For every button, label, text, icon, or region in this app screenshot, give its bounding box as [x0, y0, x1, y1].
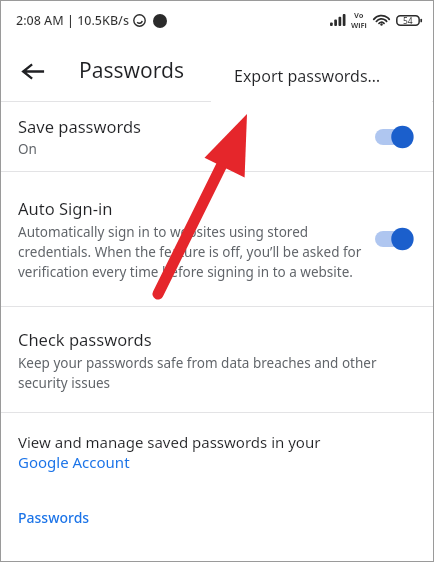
- staticText: Automatically sign in to websites using …: [18, 223, 363, 281]
- staticText: 54: [403, 15, 413, 27]
- staticText: Passwords: [18, 508, 90, 527]
- button[interactable]: Auto Sign-in: [0, 172, 434, 306]
- staticText: On: [18, 140, 37, 158]
- staticText: Keep your passwords safe from data breac…: [18, 354, 414, 392]
- staticText: 2:08 AM | 10.5KB/s: [16, 12, 129, 29]
- staticText: Auto Sign-in: [18, 197, 113, 219]
- button[interactable]: Save passwords: [0, 102, 434, 171]
- staticText: Export passwords…: [234, 65, 381, 87]
- staticText: Passwords: [79, 56, 185, 85]
- button[interactable]: Back: [11, 49, 55, 93]
- staticText: Vo: [354, 10, 364, 20]
- button[interactable]: Google Account: [18, 452, 130, 472]
- button[interactable]: Export passwords…: [211, 41, 432, 110]
- staticText: View and manage saved passwords in your: [18, 432, 321, 452]
- staticText: Check passwords: [18, 328, 152, 350]
- staticText: Save passwords: [18, 115, 141, 137]
- staticText: Google Account: [18, 452, 130, 472]
- button[interactable]: Passwords: [18, 508, 90, 527]
- button[interactable]: Check passwords: [0, 307, 434, 412]
- staticText: WiFi: [351, 20, 367, 30]
